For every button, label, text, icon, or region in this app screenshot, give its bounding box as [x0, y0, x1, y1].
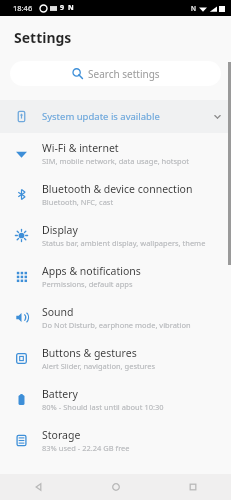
button[interactable]: Storage	[0, 420, 231, 461]
button[interactable]: Apps & notifications	[0, 256, 231, 297]
button[interactable]: Display	[0, 215, 231, 256]
button[interactable]: Search settings	[10, 61, 221, 86]
staticText: Sound	[42, 305, 74, 319]
staticText: Wi-Fi & internet	[42, 141, 119, 155]
staticText: N	[68, 3, 74, 13]
staticText: Search settings	[88, 67, 160, 81]
staticText: Battery	[42, 387, 78, 401]
staticText: Do Not Disturb, earphone mode, vibration	[42, 320, 191, 330]
staticText: SIM, mobile network, data usage, hotspot	[42, 156, 189, 166]
staticText: Apps & notifications	[42, 264, 141, 278]
button[interactable]: Home	[77, 474, 154, 500]
button[interactable]: System update is available	[0, 100, 231, 133]
staticText: Display	[42, 223, 78, 237]
staticText: Permissions, default apps	[42, 279, 133, 289]
staticText: 9	[60, 3, 65, 13]
staticText: Buttons & gestures	[42, 346, 137, 360]
staticText: System update is available	[42, 110, 203, 123]
button[interactable]: Buttons & gestures	[0, 338, 231, 379]
staticText: Storage	[42, 428, 81, 442]
button[interactable]: Bluetooth & device connection	[0, 174, 231, 215]
staticText: Alert Slider, navigation, gestures	[42, 361, 156, 371]
staticText: Settings	[14, 28, 72, 47]
button[interactable]: Back	[0, 474, 77, 500]
button[interactable]: Battery	[0, 379, 231, 420]
staticText: Bluetooth, NFC, cast	[42, 197, 114, 207]
staticText: 18:46	[13, 3, 33, 13]
staticText: 80% - Should last until about 10:30	[42, 402, 164, 412]
button[interactable]: Recents	[154, 474, 231, 500]
staticText: N	[191, 4, 196, 13]
button[interactable]: Wi-Fi & internet	[0, 133, 231, 174]
staticText: Bluetooth & device connection	[42, 182, 193, 196]
button[interactable]: Sound	[0, 297, 231, 338]
staticText: 83% used - 22.24 GB free	[42, 443, 130, 453]
staticText: Status bar, ambient display, wallpapers,…	[42, 238, 206, 248]
